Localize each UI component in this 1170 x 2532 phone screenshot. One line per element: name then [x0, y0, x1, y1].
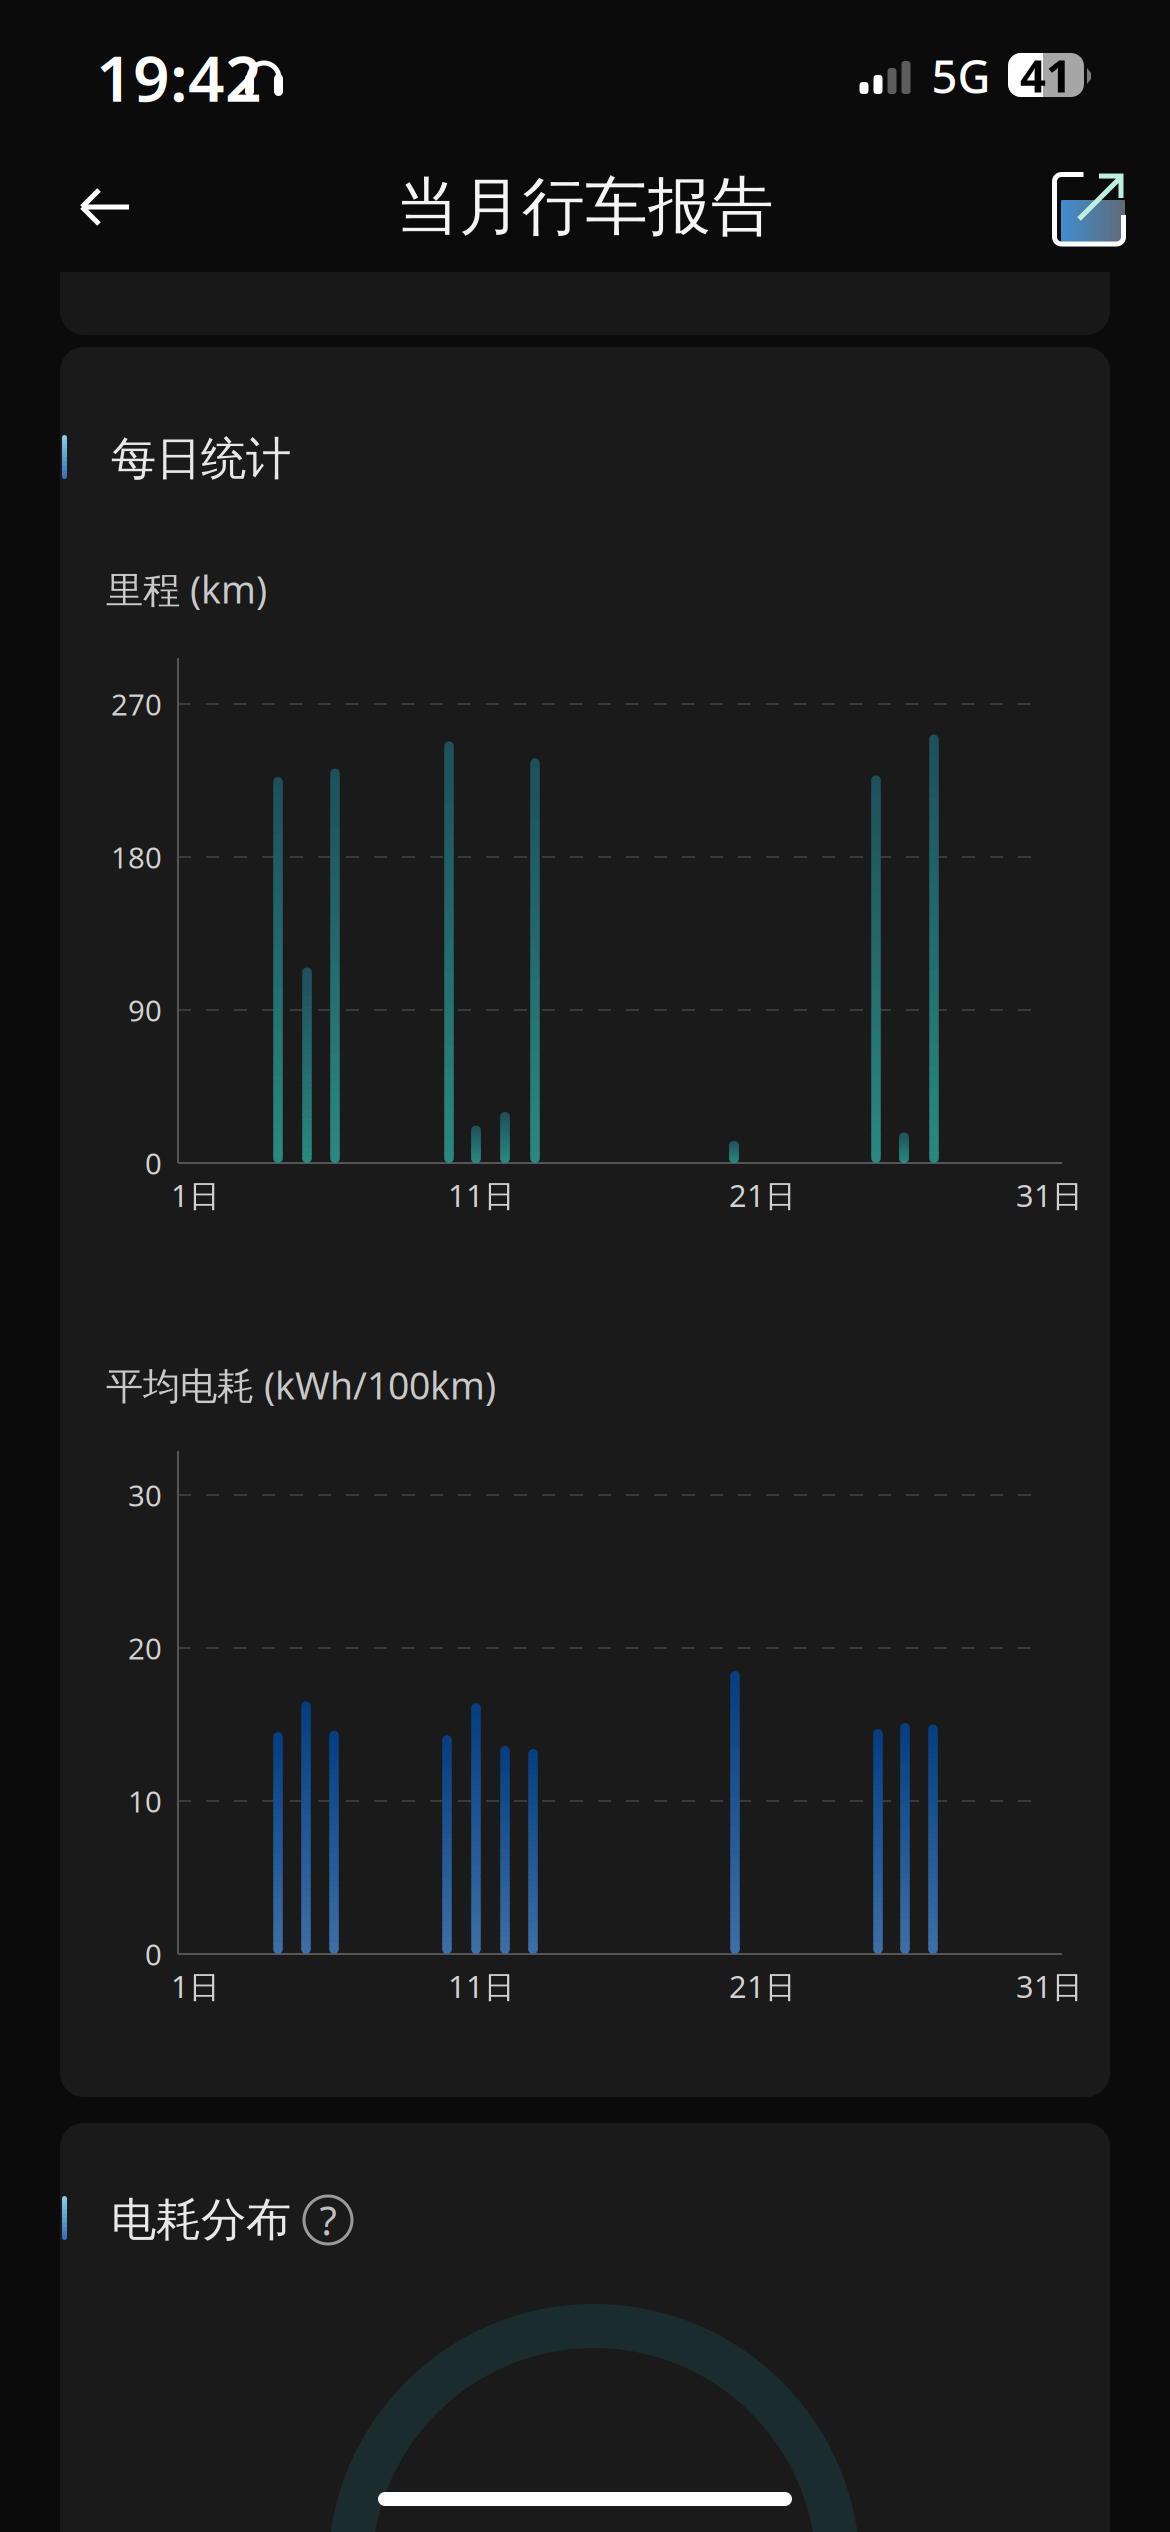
staticText: 30 [128, 1475, 162, 1514]
staticText: 180 [111, 837, 162, 876]
staticText: 270 [111, 684, 162, 723]
staticText: 0 [145, 1143, 162, 1182]
staticText: 21日 [729, 1966, 796, 2006]
staticText: 21日 [729, 1175, 796, 1215]
staticText: 平均电耗 (kWh/100km) [106, 1360, 496, 1410]
button[interactable]: More information [304, 2196, 352, 2244]
staticText: 电耗分布 [111, 2192, 291, 2248]
staticText: 当月行车报告 [396, 168, 774, 245]
staticText: 11日 [448, 1175, 515, 1215]
staticText: 1日 [171, 1966, 220, 2006]
staticText: 5G [931, 46, 990, 106]
staticText: 19:42 [96, 34, 262, 119]
staticText: 1日 [171, 1175, 220, 1215]
staticText: 10 [128, 1781, 162, 1820]
staticText: ? [319, 2193, 336, 2246]
staticText: 41 [1020, 45, 1072, 105]
staticText: 0 [145, 1934, 162, 1973]
button[interactable]: Share report [1045, 165, 1135, 255]
staticText: 里程 (km) [106, 564, 267, 614]
staticText: 20 [128, 1628, 162, 1667]
staticText: 31日 [1016, 1175, 1083, 1215]
button[interactable]: Back [26, 152, 136, 262]
staticText: 11日 [448, 1966, 515, 2006]
staticText: 每日统计 [111, 431, 291, 487]
staticText: 90 [128, 990, 162, 1029]
staticText: 31日 [1016, 1966, 1083, 2006]
